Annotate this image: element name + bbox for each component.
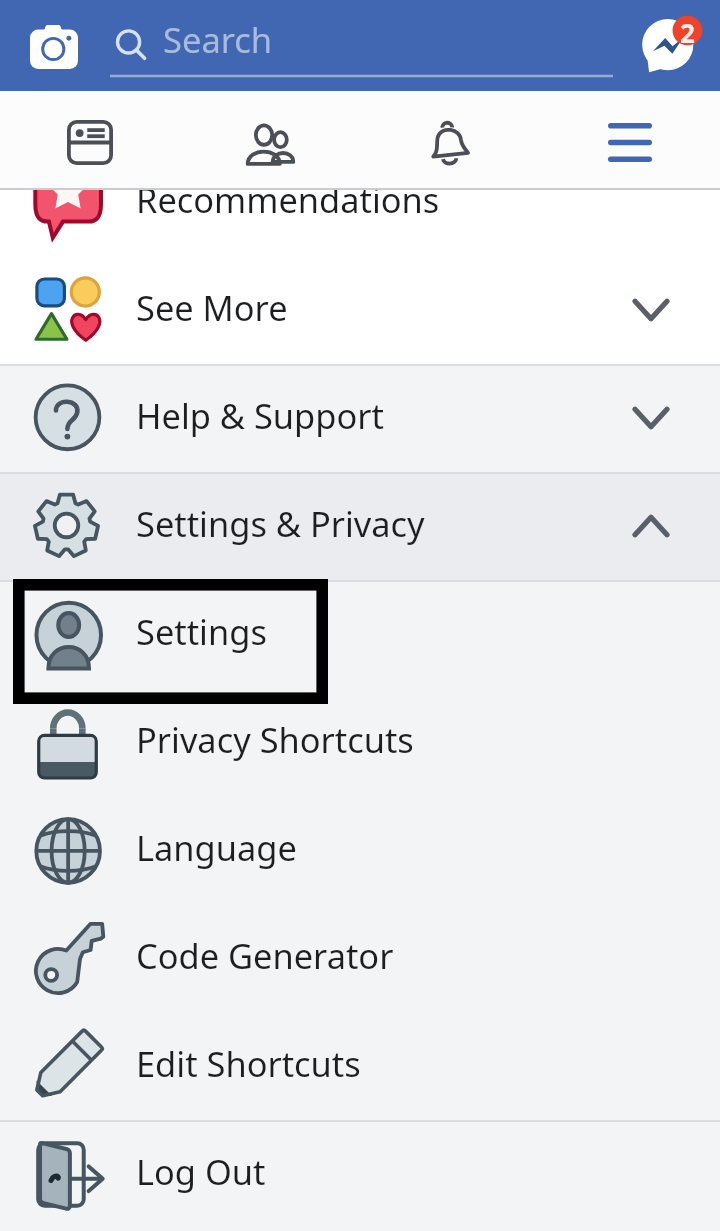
button[interactable]: Help & Support (0, 364, 720, 472)
staticText: Help & Support (136, 392, 384, 439)
button[interactable]: Notifications (360, 91, 540, 190)
staticText: Settings (136, 608, 267, 655)
staticText: Log Out (136, 1148, 266, 1195)
button[interactable]: Search (100, 4, 620, 86)
button[interactable]: Messenger (635, 9, 707, 81)
button[interactable]: Recommendations (0, 148, 720, 256)
staticText: Settings & Privacy (136, 500, 425, 547)
staticText: Language (136, 824, 297, 871)
staticText: Privacy Shortcuts (136, 716, 414, 763)
button[interactable]: News Feed (0, 91, 180, 190)
button[interactable]: Friends (180, 91, 360, 190)
button[interactable]: Code Generator (0, 904, 720, 1012)
button[interactable]: Log Out (0, 1120, 720, 1228)
button[interactable]: Privacy Shortcuts (0, 688, 720, 796)
staticText: See More (136, 284, 288, 331)
button[interactable]: Edit Shortcuts (0, 1012, 720, 1120)
button[interactable]: Settings (0, 580, 720, 688)
button[interactable]: Settings & Privacy (0, 472, 720, 580)
staticText: Search (163, 16, 273, 63)
staticText: 2 (680, 15, 695, 45)
staticText: Edit Shortcuts (136, 1040, 361, 1087)
button[interactable]: Menu (540, 91, 720, 190)
button[interactable]: Language (0, 796, 720, 904)
staticText: Recommendations (136, 176, 440, 223)
button[interactable]: See More (0, 256, 720, 364)
button[interactable]: Camera (14, 9, 86, 81)
staticText: Code Generator (136, 932, 394, 979)
